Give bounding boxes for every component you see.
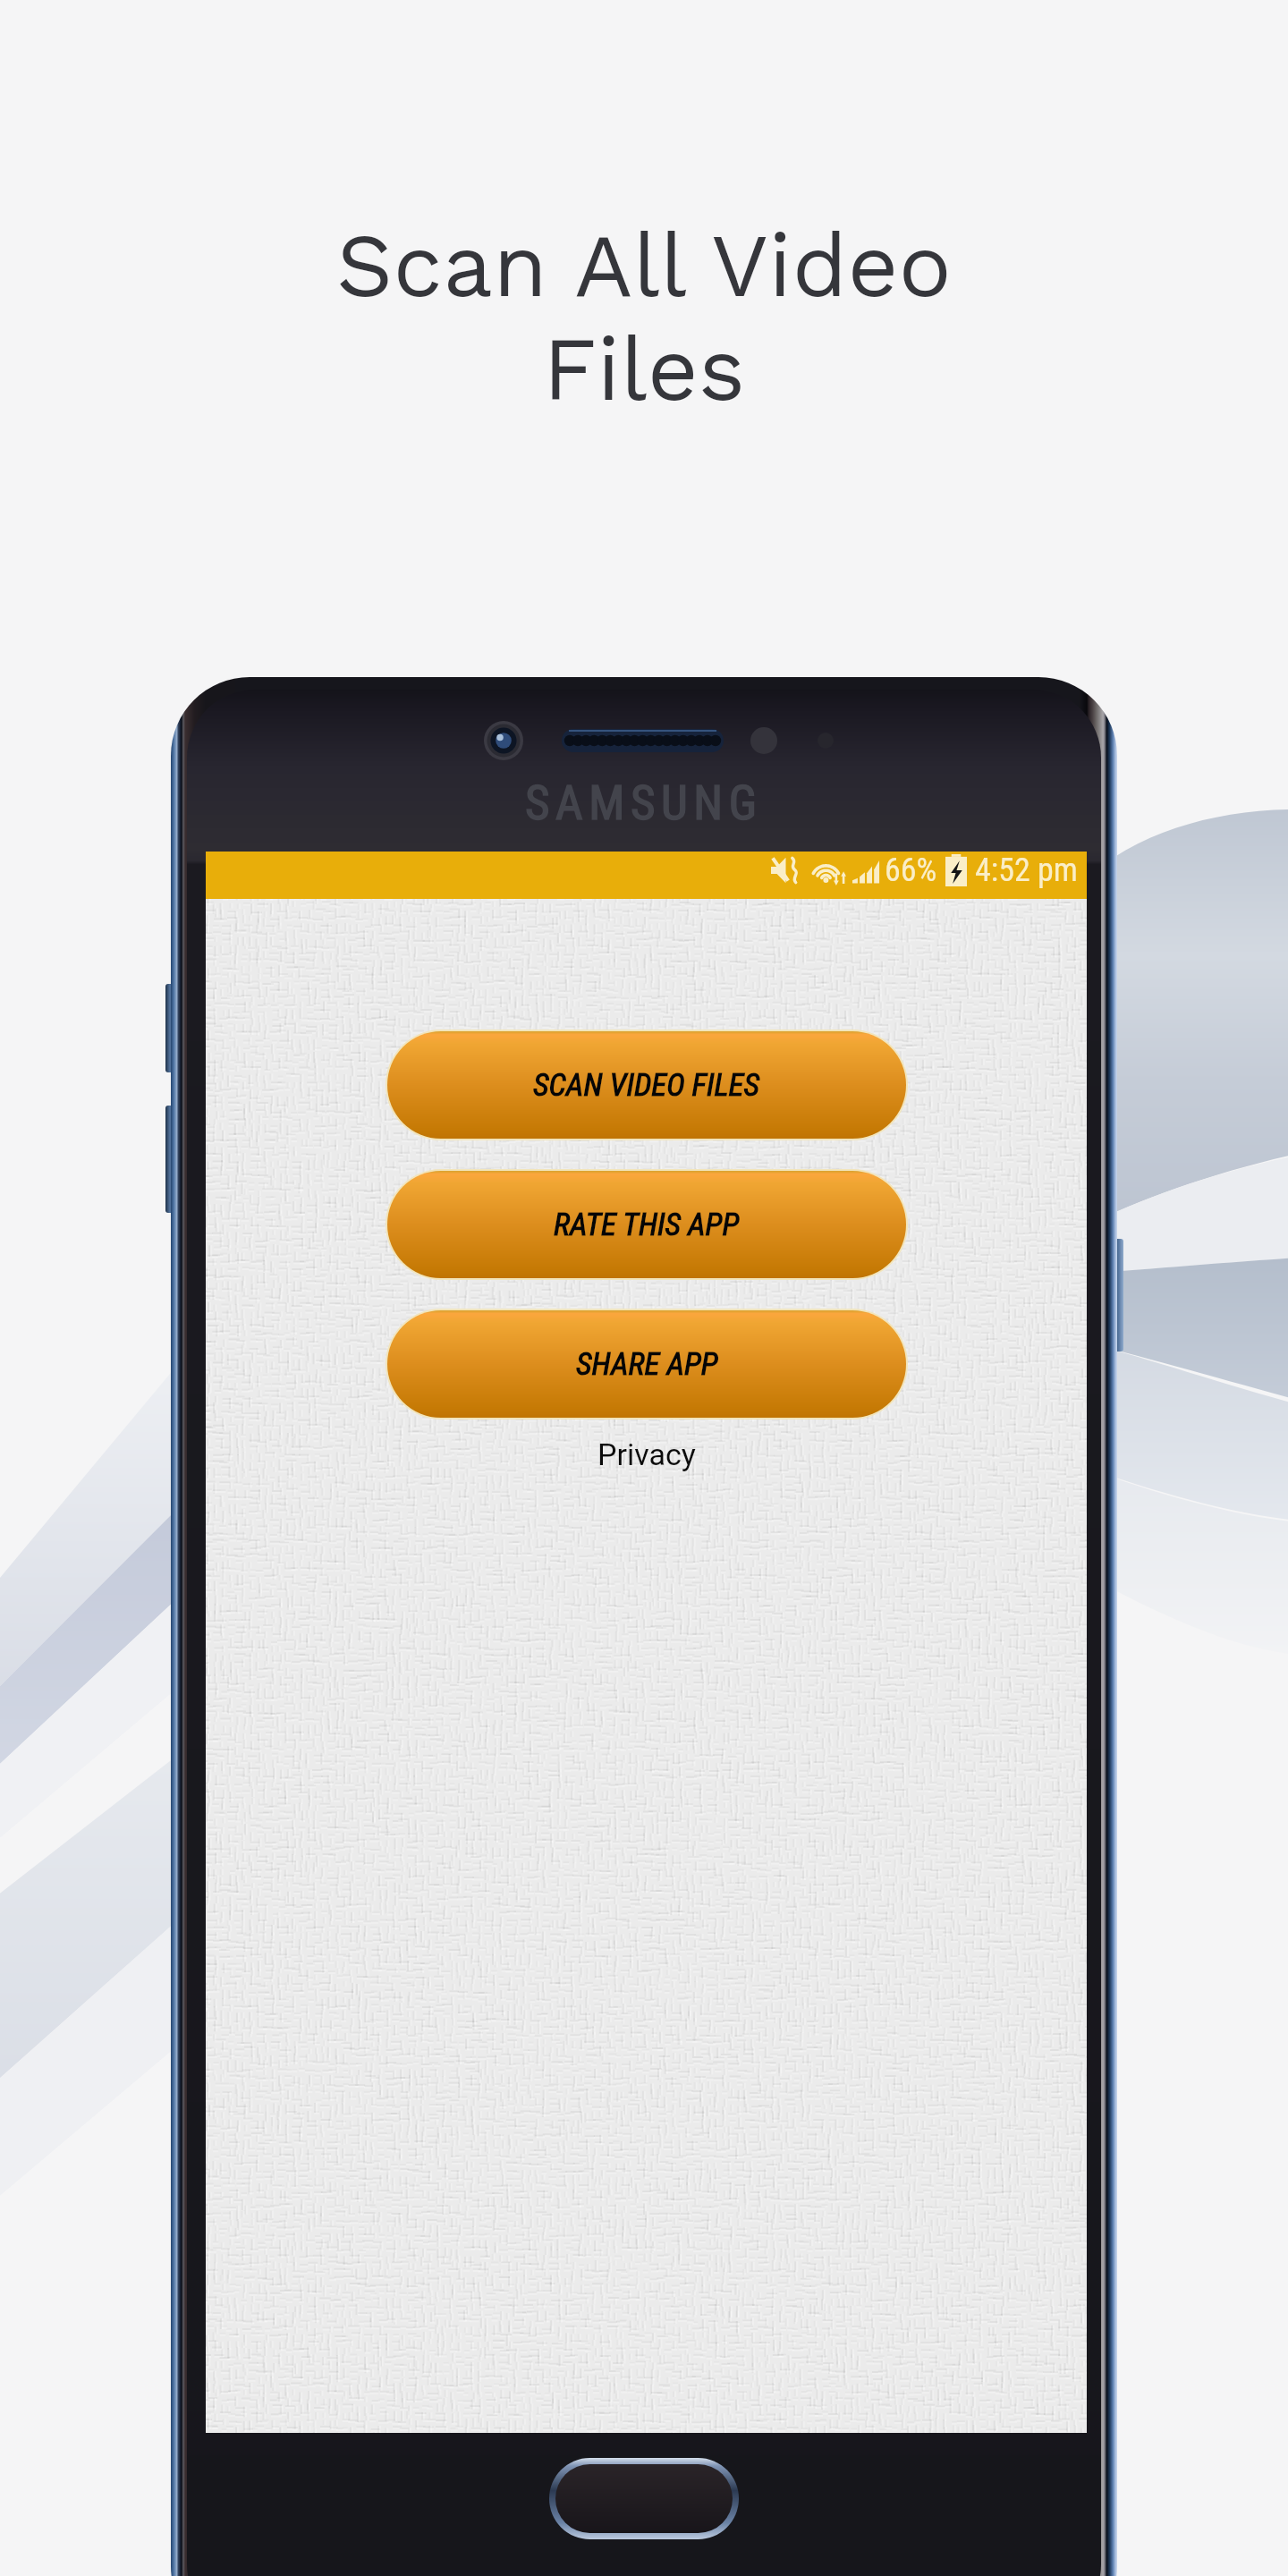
button[interactable]: Home bbox=[549, 2458, 739, 2539]
other: Bixby bbox=[165, 1106, 174, 1213]
staticText: SAMSUNG bbox=[525, 775, 763, 831]
button[interactable]: Privacy bbox=[576, 1430, 717, 1479]
staticText: Scan All Video Files bbox=[336, 214, 952, 421]
button[interactable]: RATE THIS APP bbox=[386, 1169, 908, 1280]
staticText: SCAN VIDEO FILES bbox=[533, 1067, 760, 1104]
staticText: RATE THIS APP bbox=[554, 1207, 740, 1243]
staticText: Privacy bbox=[597, 1436, 696, 1472]
other: Power bbox=[1114, 1239, 1123, 1352]
button[interactable]: SCAN VIDEO FILES bbox=[386, 1030, 908, 1140]
button[interactable]: SHARE APP bbox=[386, 1309, 908, 1419]
staticText: SHARE APP bbox=[576, 1346, 718, 1383]
staticText: 66% bbox=[885, 852, 937, 889]
staticText: 4:52 pm bbox=[975, 852, 1078, 889]
other: Volume bbox=[165, 984, 174, 1072]
